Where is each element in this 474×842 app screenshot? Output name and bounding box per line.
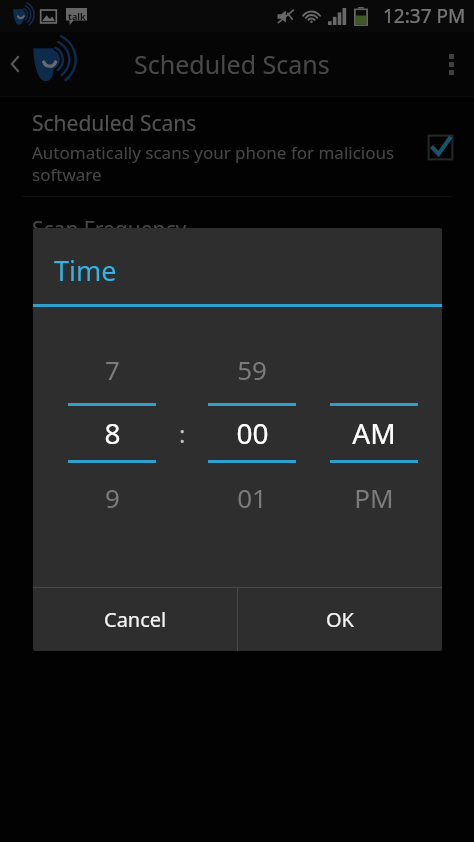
staticText: 7 — [105, 352, 120, 387]
button[interactable]: OK — [238, 588, 442, 651]
staticText: PM — [354, 480, 394, 515]
staticText: Scan Frequency — [32, 215, 187, 244]
button[interactable]: Cancel — [33, 588, 237, 651]
staticText: 9 — [105, 480, 120, 515]
staticText: : — [179, 417, 186, 450]
staticText: Scheduled Scans — [134, 47, 330, 81]
button[interactable]: AM or PM — [319, 347, 429, 519]
button[interactable]: More options — [428, 32, 474, 96]
button[interactable]: Minute — [197, 347, 307, 519]
staticText: Time — [54, 252, 117, 289]
staticText: 8 — [104, 414, 121, 452]
button[interactable]: Scheduled Scans — [0, 105, 474, 196]
staticText: 01 — [237, 480, 267, 515]
staticText: Cancel — [104, 606, 167, 633]
staticText: OK — [326, 606, 354, 633]
staticText: talk — [68, 10, 86, 22]
staticText: AM — [352, 414, 396, 452]
staticText: 12:37 PM — [383, 3, 466, 29]
button[interactable]: Navigate up — [0, 32, 81, 96]
button[interactable]: Hour — [57, 347, 167, 519]
staticText: 00 — [236, 414, 269, 452]
staticText: 59 — [237, 352, 267, 387]
staticText: Automatically scans your phone for malic… — [32, 141, 413, 186]
staticText: Scheduled Scans — [32, 109, 197, 138]
